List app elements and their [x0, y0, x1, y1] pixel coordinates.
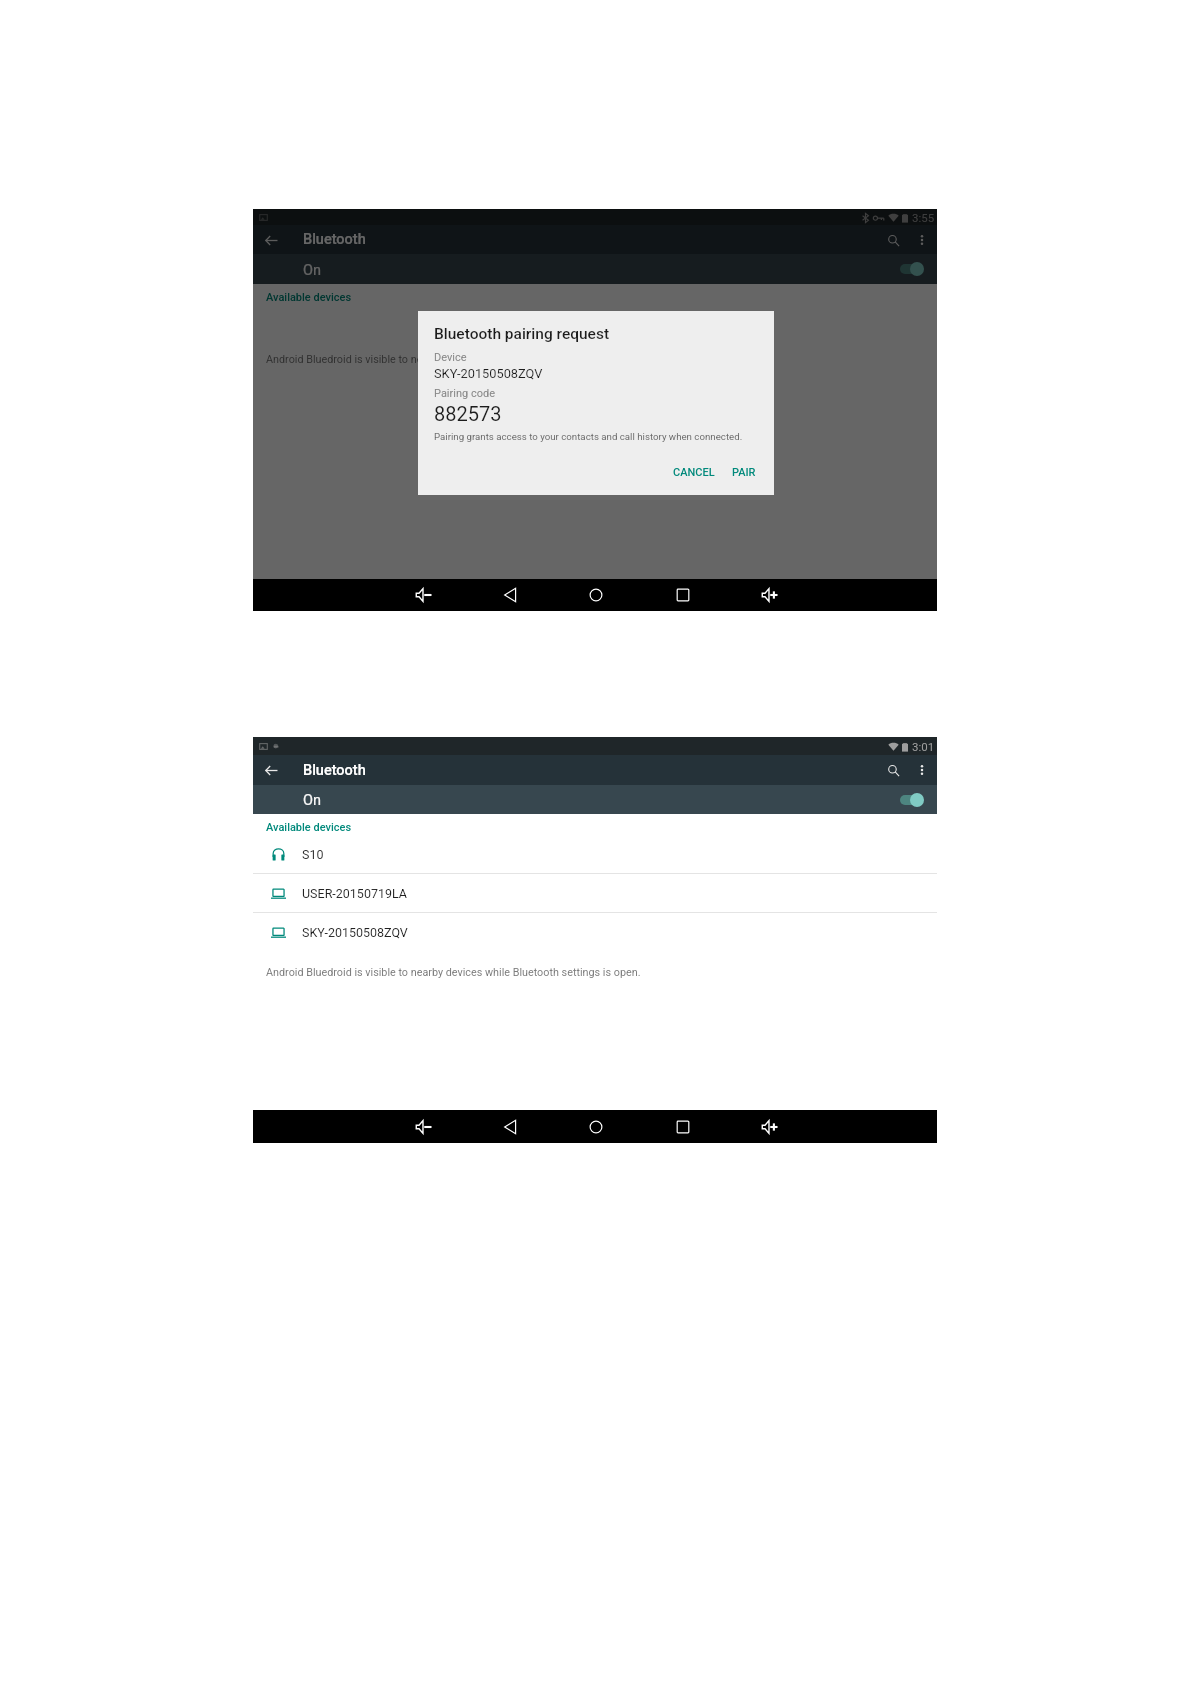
button[interactable]: CANCEL [669, 462, 719, 483]
staticText: On [303, 792, 321, 809]
button[interactable]: Bluetooth on [899, 261, 925, 277]
button[interactable]: SKY-20150508ZQV [253, 913, 937, 951]
staticText: Pairing code [434, 387, 495, 400]
button[interactable]: Search [882, 229, 904, 251]
button[interactable]: Volume up [761, 1120, 779, 1134]
button[interactable]: Back [503, 588, 517, 602]
staticText: Bluetooth pairing request [434, 325, 610, 343]
staticText: Device [434, 351, 467, 364]
button[interactable]: On [253, 785, 937, 814]
staticText: 882573 [434, 402, 502, 425]
button[interactable]: Recents [676, 1120, 690, 1134]
button[interactable]: USER-20150719LA [253, 874, 937, 912]
button[interactable]: Back [503, 1120, 517, 1134]
staticText: Available devices [266, 821, 352, 834]
staticText: SKY-20150508ZQV [302, 925, 408, 940]
button[interactable]: Back [259, 228, 283, 252]
staticText: Bluetooth [303, 231, 366, 248]
staticText: 3:01 [912, 740, 935, 753]
staticText: SKY-20150508ZQV [434, 366, 543, 381]
button[interactable]: More options [911, 229, 933, 251]
staticText: Android Bluedroid is visible to nearby d… [266, 966, 641, 979]
staticText: On [303, 262, 321, 279]
staticText: CANCEL [673, 466, 715, 479]
button[interactable]: Volume down [415, 1120, 433, 1134]
button[interactable]: Recents [676, 588, 690, 602]
button[interactable]: Home [589, 1120, 603, 1134]
button[interactable]: More options [911, 759, 933, 781]
button[interactable]: Volume down [415, 588, 433, 602]
staticText: Bluetooth [303, 762, 366, 779]
button[interactable]: Back [259, 758, 283, 782]
button[interactable]: On [253, 254, 937, 284]
staticText: S10 [302, 847, 324, 862]
staticText: 3:55 [912, 211, 935, 224]
staticText: PAIR [732, 466, 756, 479]
staticText: Available devices [266, 291, 352, 304]
staticText: Android Bluedroid is visible to nearby d… [266, 353, 641, 366]
button[interactable]: Bluetooth on [899, 792, 925, 808]
button[interactable]: Search [882, 759, 904, 781]
button[interactable]: Volume up [761, 588, 779, 602]
button[interactable]: S10 [253, 835, 937, 873]
button[interactable]: PAIR [728, 462, 760, 483]
staticText: Pairing grants access to your contacts a… [434, 431, 743, 442]
button[interactable]: Home [589, 588, 603, 602]
staticText: USER-20150719LA [302, 886, 407, 901]
